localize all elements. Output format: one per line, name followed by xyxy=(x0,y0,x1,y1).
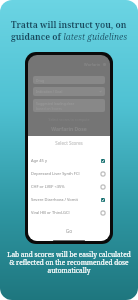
staticText: Warfarin xyxy=(84,62,101,67)
button[interactable]: Depressed Liver Synth FCl xyxy=(28,167,110,180)
button[interactable]: Age 45 y xyxy=(28,154,110,167)
staticText: Go xyxy=(28,228,110,235)
staticText: Drug xyxy=(36,78,45,83)
staticText: Severe Diarrhoea / Vomit xyxy=(31,197,101,202)
staticText: Viral HB or Third-GCl xyxy=(31,210,101,215)
staticText: Indication / Goal xyxy=(36,89,63,94)
staticText: CHF or LVEF <35% xyxy=(31,184,101,189)
staticText: Warfarin Dose xyxy=(28,126,110,133)
button[interactable]: Viral HB or Third-GCl xyxy=(28,206,110,219)
button[interactable]: CHF or LVEF <35% xyxy=(28,180,110,193)
staticText: Age 45 y xyxy=(31,158,101,163)
staticText: Depressed Liver Synth FCl xyxy=(31,171,101,176)
staticText: Suggested loading dose xyxy=(36,101,75,106)
button[interactable]: Severe Diarrhoea / Vomit xyxy=(28,193,110,206)
staticText: Tratta will instruct you, on xyxy=(11,19,127,31)
staticText: guidance of latest guidelines xyxy=(11,31,128,43)
staticText: Lab and scores will be easily calculated… xyxy=(0,250,138,275)
staticText: Select Scores xyxy=(28,140,110,146)
